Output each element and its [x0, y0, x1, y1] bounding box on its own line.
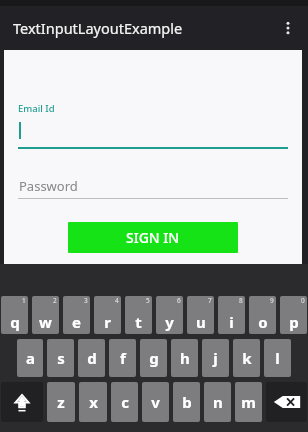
button[interactable]: 0: [280, 296, 307, 334]
button[interactable]: x: [79, 382, 107, 422]
staticText: 6: [177, 296, 181, 305]
button[interactable]: Shift: [1, 382, 43, 422]
staticText: i: [229, 312, 234, 332]
staticText: 8: [239, 296, 243, 305]
staticText: p: [289, 312, 299, 332]
button[interactable]: [4, 121, 302, 147]
button[interactable]: a: [17, 339, 43, 377]
button[interactable]: v: [142, 382, 169, 422]
staticText: TextInputLayoutExample: [13, 18, 183, 38]
staticText: a: [26, 348, 35, 368]
button[interactable]: Password: [4, 174, 302, 198]
button[interactable]: 1: [1, 296, 28, 334]
button[interactable]: 3: [63, 296, 90, 334]
staticText: 2: [53, 296, 57, 305]
staticText: c: [121, 392, 129, 412]
button[interactable]: SIGN IN: [68, 222, 238, 253]
staticText: 0: [301, 296, 305, 305]
button[interactable]: g: [140, 339, 167, 377]
button[interactable]: h: [171, 339, 198, 377]
staticText: m: [241, 392, 256, 412]
staticText: 7: [208, 296, 212, 305]
staticText: u: [196, 312, 206, 332]
staticText: e: [72, 312, 81, 332]
staticText: 3: [84, 296, 88, 305]
button[interactable]: m: [235, 382, 262, 422]
button[interactable]: 5: [125, 296, 152, 334]
staticText: k: [242, 348, 252, 368]
staticText: 9: [270, 296, 274, 305]
staticText: s: [57, 348, 65, 368]
staticText: f: [120, 348, 126, 368]
button[interactable]: 2: [32, 296, 59, 334]
button[interactable]: 8: [218, 296, 245, 334]
staticText: v: [151, 392, 160, 412]
staticText: t: [135, 312, 142, 332]
staticText: d: [87, 348, 97, 368]
staticText: SIGN IN: [126, 228, 180, 247]
staticText: Password: [19, 177, 78, 195]
staticText: r: [104, 312, 111, 332]
button[interactable]: 9: [249, 296, 276, 334]
button[interactable]: More options: [274, 14, 302, 42]
staticText: y: [165, 312, 174, 332]
button[interactable]: c: [111, 382, 138, 422]
button[interactable]: f: [109, 339, 136, 377]
staticText: 1: [22, 296, 26, 305]
button[interactable]: Backspace: [266, 382, 307, 422]
staticText: h: [180, 348, 190, 368]
button[interactable]: k: [233, 339, 260, 377]
button[interactable]: d: [78, 339, 105, 377]
button[interactable]: n: [204, 382, 231, 422]
button[interactable]: b: [173, 382, 200, 422]
staticText: Email Id: [18, 102, 55, 115]
staticText: b: [182, 392, 192, 412]
staticText: 4: [115, 296, 119, 305]
staticText: g: [149, 348, 159, 368]
staticText: z: [57, 392, 65, 412]
button[interactable]: z: [47, 382, 75, 422]
staticText: j: [213, 348, 218, 368]
button[interactable]: l: [264, 339, 291, 377]
button[interactable]: s: [47, 339, 74, 377]
staticText: q: [10, 312, 20, 332]
staticText: n: [213, 392, 223, 412]
staticText: x: [89, 392, 98, 412]
button[interactable]: 4: [94, 296, 121, 334]
staticText: 5: [146, 296, 150, 305]
staticText: o: [258, 312, 268, 332]
staticText: l: [275, 348, 280, 368]
staticText: w: [39, 312, 52, 332]
button[interactable]: 7: [187, 296, 214, 334]
button[interactable]: 6: [156, 296, 183, 334]
button[interactable]: j: [202, 339, 229, 377]
